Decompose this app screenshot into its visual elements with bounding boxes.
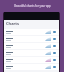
button[interactable] [4, 50, 59, 56]
staticText: Charts [6, 21, 20, 26]
staticText: Beautiful charts for your app [14, 4, 51, 8]
button[interactable] [4, 36, 59, 42]
button[interactable] [4, 43, 59, 49]
button[interactable] [4, 29, 59, 35]
button[interactable] [4, 57, 59, 63]
button[interactable] [4, 64, 59, 70]
